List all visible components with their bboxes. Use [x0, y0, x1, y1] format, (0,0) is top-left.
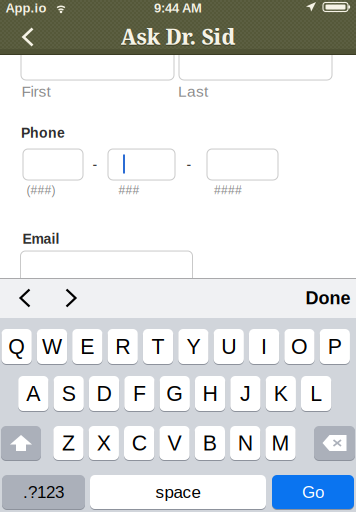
staticText: Go — [302, 482, 324, 501]
staticText: U — [221, 335, 236, 358]
staticText: - — [186, 157, 191, 173]
button[interactable]: R — [108, 328, 138, 365]
staticText: (###) — [26, 183, 55, 197]
button[interactable]: E — [72, 328, 102, 365]
staticText: Done — [305, 288, 350, 308]
button[interactable]: Previous field — [3, 278, 47, 318]
button[interactable]: Back — [5, 18, 51, 56]
button[interactable]: Y — [178, 328, 208, 365]
staticText: F — [133, 382, 146, 405]
staticText: Y — [186, 335, 200, 358]
staticText: Email — [22, 231, 59, 247]
button[interactable]: U — [214, 328, 244, 365]
staticText: Z — [62, 431, 75, 455]
staticText: Q — [8, 335, 25, 358]
staticText: Ask Dr. Sid — [120, 23, 235, 52]
button[interactable]: P — [320, 328, 350, 365]
staticText: O — [291, 335, 308, 358]
staticText: S — [62, 382, 76, 405]
button[interactable]: .?123 — [2, 474, 85, 510]
button[interactable] — [1, 425, 41, 461]
staticText: space — [155, 482, 200, 501]
button[interactable]: Next field — [49, 278, 93, 318]
button[interactable]: W — [37, 328, 67, 365]
staticText: W — [42, 335, 62, 358]
button[interactable]: Go — [272, 474, 354, 510]
button[interactable]: K — [266, 375, 296, 412]
staticText: J — [240, 382, 251, 405]
button[interactable]: S — [54, 375, 84, 412]
staticText: T — [152, 335, 165, 358]
button[interactable]: J — [230, 375, 261, 412]
button[interactable] — [314, 425, 355, 461]
button[interactable]: M — [265, 425, 296, 461]
button[interactable]: H — [195, 375, 225, 412]
staticText: X — [97, 431, 111, 455]
staticText: First — [21, 83, 50, 100]
staticText: A — [26, 382, 40, 405]
staticText: G — [166, 382, 183, 405]
button[interactable]: Done — [293, 278, 356, 318]
button[interactable]: O — [284, 328, 315, 365]
staticText: D — [97, 382, 112, 405]
staticText: H — [203, 382, 218, 405]
staticText: B — [203, 431, 217, 455]
button[interactable]: B — [195, 425, 225, 461]
button[interactable]: space — [90, 474, 266, 510]
staticText: N — [238, 431, 253, 455]
staticText: Ask Dr. Sid — [120, 22, 235, 51]
staticText: Phone — [21, 125, 65, 141]
button[interactable]: T — [143, 328, 173, 365]
button[interactable]: N — [230, 425, 260, 461]
staticText: ### — [118, 183, 139, 197]
staticText: M — [272, 431, 290, 455]
button[interactable]: F — [124, 375, 154, 412]
button[interactable]: Z — [53, 425, 84, 461]
staticText: App.io — [5, 1, 46, 15]
staticText: E — [80, 335, 94, 358]
staticText: - — [92, 157, 97, 173]
staticText: Last — [178, 83, 208, 100]
button[interactable]: X — [89, 425, 119, 461]
staticText: #### — [214, 183, 242, 197]
button[interactable]: A — [18, 375, 48, 412]
button[interactable]: I — [249, 328, 279, 365]
staticText: I — [261, 335, 267, 358]
button[interactable]: C — [124, 425, 154, 461]
staticText: P — [328, 335, 342, 358]
staticText: .?123 — [23, 482, 64, 501]
staticText: V — [167, 431, 181, 455]
staticText: 9:44 AM — [154, 1, 202, 15]
staticText: R — [115, 335, 130, 358]
button[interactable]: L — [301, 375, 331, 412]
staticText: L — [310, 382, 322, 405]
button[interactable]: G — [160, 375, 190, 412]
button[interactable]: D — [89, 375, 119, 412]
button[interactable]: V — [159, 425, 190, 461]
button[interactable]: Q — [1, 328, 32, 365]
staticText: C — [132, 431, 147, 455]
staticText: K — [274, 382, 288, 405]
